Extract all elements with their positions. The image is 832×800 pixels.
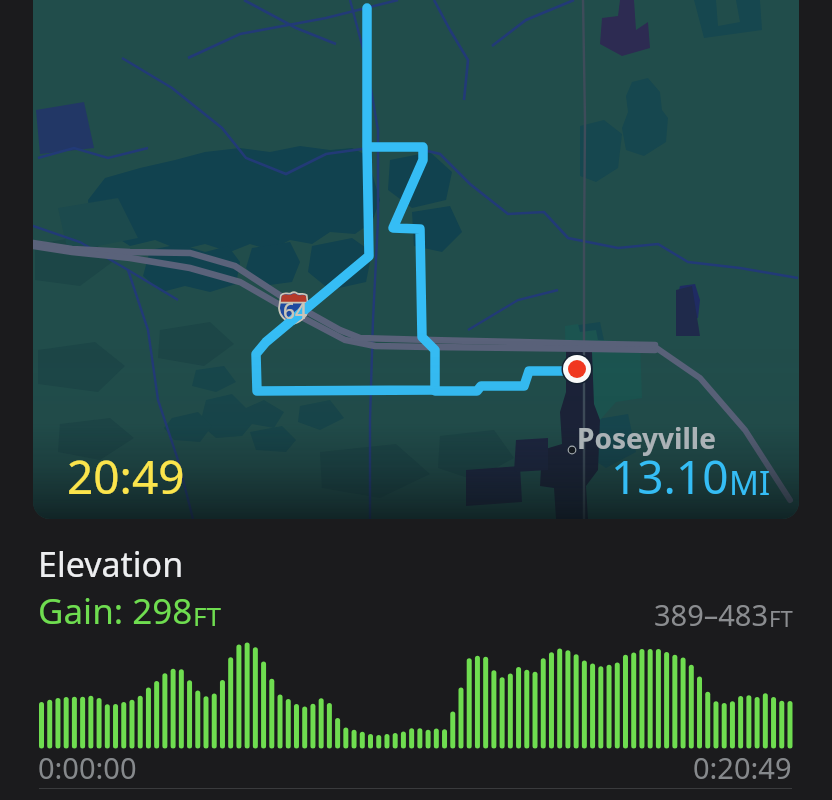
staticText: Elevation xyxy=(38,541,184,587)
staticText: 0:20:49 xyxy=(693,748,792,787)
staticText: 13.10 xyxy=(611,445,729,508)
staticText: Poseyville xyxy=(577,419,716,457)
staticText: Gain: 298 xyxy=(38,587,193,635)
staticText: 20:49 xyxy=(67,445,185,508)
staticText: 0:00:00 xyxy=(38,748,137,787)
button[interactable]: 64 xyxy=(33,0,799,519)
staticText: FT xyxy=(193,598,221,633)
staticText: 64 xyxy=(283,297,308,326)
staticText: MI xyxy=(729,460,771,505)
staticText: FT xyxy=(769,603,793,633)
staticText: 389–483 xyxy=(654,595,769,634)
